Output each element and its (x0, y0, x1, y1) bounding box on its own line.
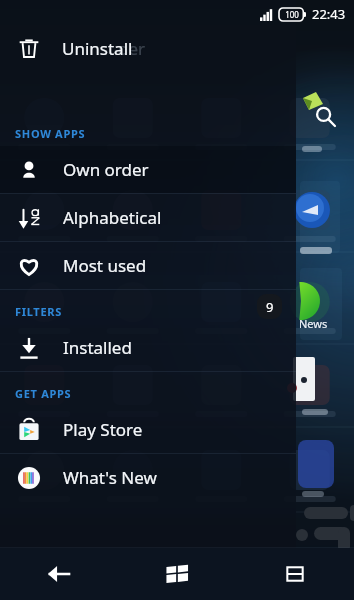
staticText: Alphabetical (63, 206, 162, 229)
button[interactable]: Back (0, 548, 118, 600)
staticText: Installed (63, 336, 132, 359)
button[interactable]: Own order (0, 146, 296, 193)
button[interactable]: Alphabetical (0, 194, 296, 241)
button[interactable]: Recent apps (236, 548, 354, 600)
staticText: What's New (63, 466, 157, 489)
staticText: Uninstall (62, 37, 133, 60)
button[interactable]: Most used (0, 242, 296, 289)
staticText: der (118, 37, 146, 60)
staticText: News (299, 316, 328, 331)
button[interactable]: Home (118, 548, 236, 600)
staticText: 22:43 (312, 5, 346, 23)
button[interactable]: Installed (0, 324, 296, 371)
button[interactable]: Uninstall (10, 29, 48, 67)
staticText: Own order (63, 158, 149, 181)
staticText: GET APPS (15, 386, 72, 401)
button[interactable]: What's New (0, 454, 296, 501)
staticText: SHOW APPS (15, 126, 86, 141)
staticText: Play Store (63, 418, 143, 441)
staticText: 100 (285, 9, 299, 20)
staticText: FILTERS (15, 304, 62, 319)
button[interactable]: Play Store (0, 406, 296, 453)
staticText: 9 (266, 298, 274, 316)
staticText: Most used (63, 254, 147, 277)
button[interactable]: Search (305, 96, 345, 136)
